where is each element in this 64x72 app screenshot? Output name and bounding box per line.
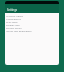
- button[interactable]: Settings: [5, 4, 59, 13]
- staticText: Notifications: [6, 17, 21, 20]
- staticText: Account name: [6, 14, 23, 17]
- button[interactable]: Notifications: [5, 17, 59, 20]
- staticText: Settings: [7, 8, 18, 12]
- button[interactable]: Sync data: [5, 20, 59, 23]
- staticText: About this application: [6, 29, 32, 32]
- button[interactable]: Account name: [5, 14, 59, 17]
- button[interactable]: Privacy policy: [5, 26, 59, 29]
- button[interactable]: Display size: [5, 23, 59, 26]
- staticText: Sync data: [6, 20, 18, 23]
- staticText: Display size: [6, 23, 20, 26]
- button[interactable]: About this application: [5, 29, 59, 32]
- staticText: Privacy policy: [6, 26, 22, 29]
